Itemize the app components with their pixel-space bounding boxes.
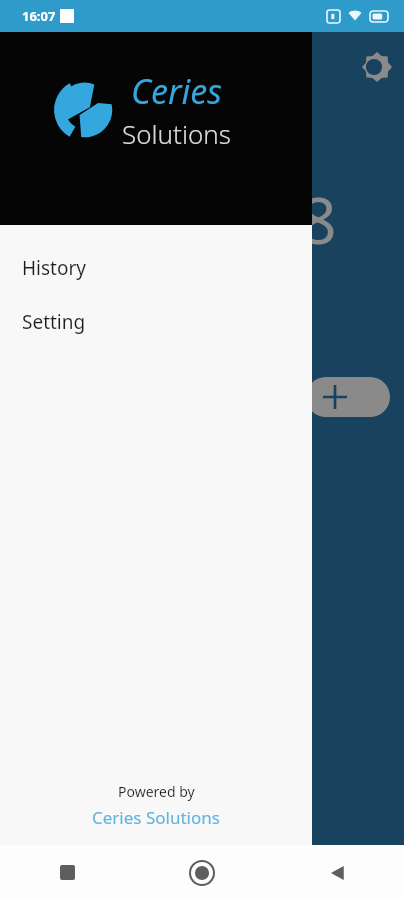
button[interactable]: Setting xyxy=(0,295,312,349)
button[interactable]: Home xyxy=(134,845,269,900)
staticText: Ceries xyxy=(131,68,222,114)
button[interactable]: Recent apps xyxy=(0,845,134,900)
staticText: Setting xyxy=(22,309,86,335)
button[interactable]: History xyxy=(0,241,312,295)
staticText: History xyxy=(22,255,86,281)
staticText: Ceries Solutions xyxy=(92,806,220,829)
staticText: 16:07 xyxy=(22,7,56,25)
button[interactable]: Add xyxy=(306,377,390,417)
button[interactable]: Ceries Solutions xyxy=(92,806,220,829)
staticText: Solutions xyxy=(122,116,231,151)
button[interactable]: Back xyxy=(269,845,404,900)
staticText: 8 xyxy=(300,176,337,263)
button[interactable]: Toggle dark mode xyxy=(356,46,398,88)
staticText: Powered by xyxy=(118,782,195,801)
